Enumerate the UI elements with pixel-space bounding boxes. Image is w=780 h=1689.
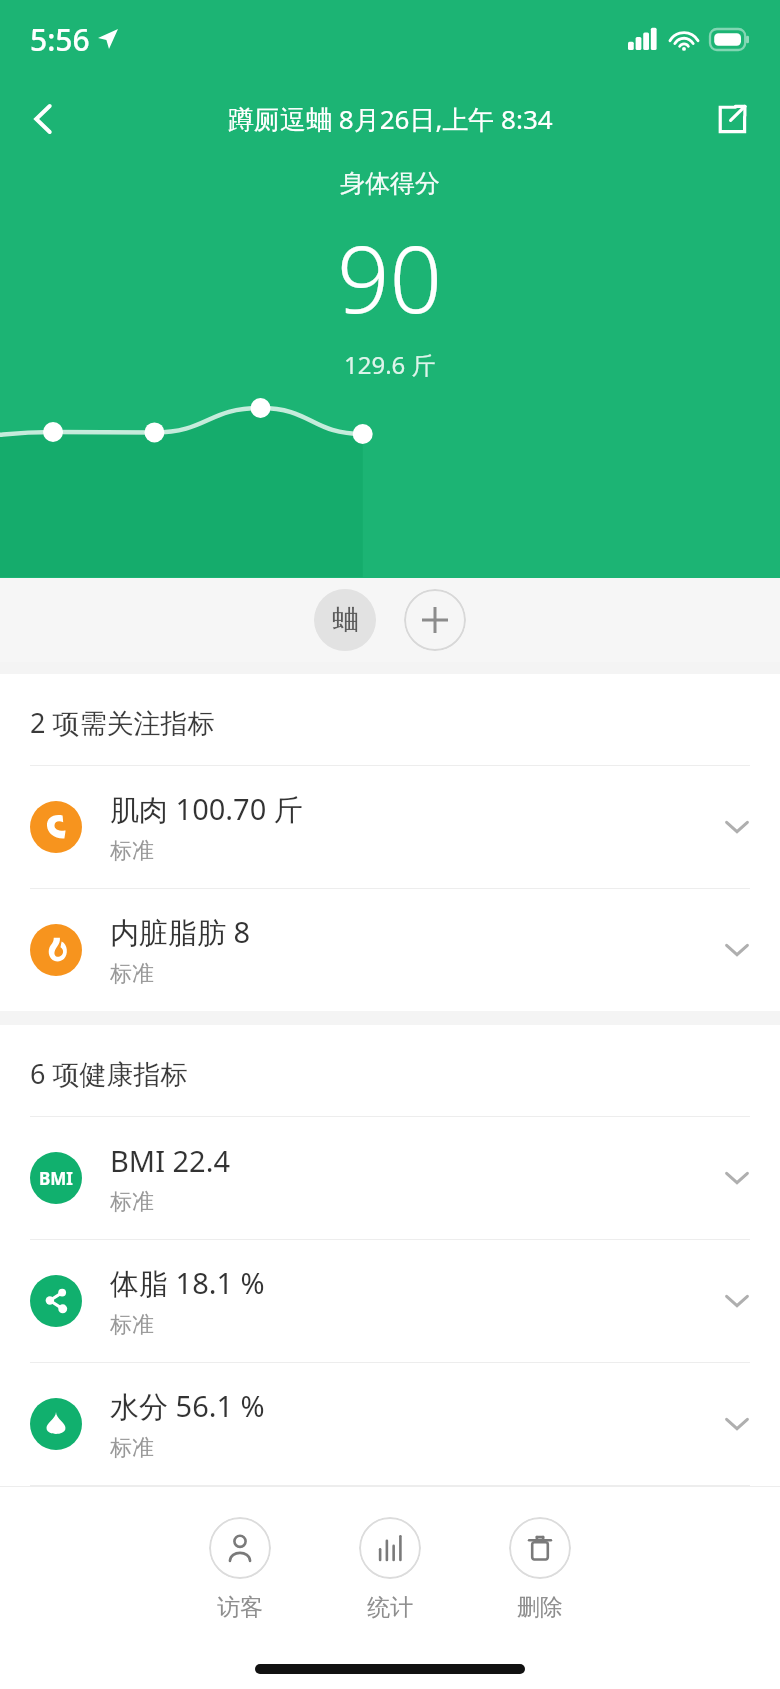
button[interactable]: Add user: [404, 589, 466, 651]
staticText: 内脏脂肪 8: [110, 912, 251, 952]
staticText: 删除: [517, 1593, 563, 1622]
staticText: 129.6 斤: [344, 348, 436, 381]
staticText: 标准: [110, 837, 154, 865]
staticText: BMI: [39, 1167, 73, 1190]
button[interactable]: Share: [702, 89, 762, 149]
staticText: 访客: [217, 1593, 263, 1622]
staticText: 标准: [110, 1311, 154, 1339]
staticText: 水分 56.1 %: [110, 1386, 265, 1426]
staticText: 统计: [367, 1593, 413, 1622]
button[interactable]: 统计: [315, 1513, 465, 1626]
button[interactable]: Back: [14, 89, 74, 149]
staticText: 标准: [110, 960, 154, 988]
button[interactable]: 删除: [465, 1513, 615, 1626]
staticText: 肌肉 100.70 斤: [110, 789, 303, 829]
staticText: 90: [337, 215, 443, 340]
button[interactable]: 水分 56.1 %: [0, 1363, 780, 1485]
staticText: 体脂 18.1 %: [110, 1263, 265, 1303]
button[interactable]: 肌肉 100.70 斤: [0, 766, 780, 888]
button[interactable]: 内脏脂肪 8: [0, 889, 780, 1011]
staticText: 蹲厕逗蛐 8月26日,上午 8:34: [228, 101, 553, 137]
staticText: 5:56: [30, 19, 90, 60]
staticText: 2 项需关注指标: [30, 704, 215, 741]
staticText: 标准: [110, 1188, 154, 1216]
staticText: 6 项健康指标: [30, 1055, 188, 1092]
staticText: BMI 22.4: [110, 1141, 231, 1180]
button[interactable]: 访客: [165, 1513, 315, 1626]
staticText: 身体得分: [340, 168, 440, 199]
button[interactable]: 体脂 18.1 %: [0, 1240, 780, 1362]
staticText: 标准: [110, 1434, 154, 1462]
button[interactable]: 蛐: [314, 589, 376, 651]
button[interactable]: BMI: [0, 1117, 780, 1239]
staticText: 蛐: [332, 603, 359, 637]
